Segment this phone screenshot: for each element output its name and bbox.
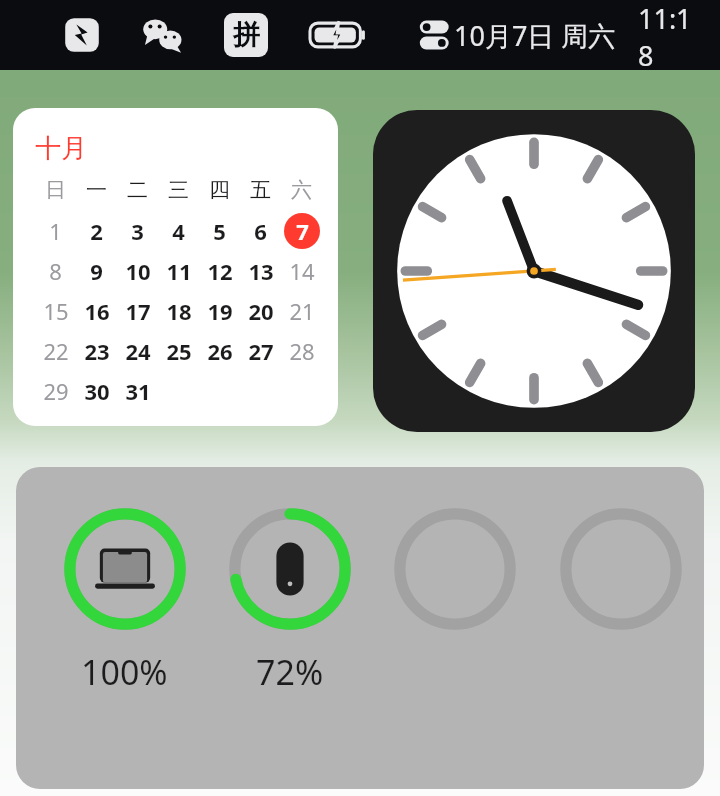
staticText: 11:18 [638,0,700,70]
button[interactable]: 100% [16,467,704,789]
staticText: 16 [84,296,110,326]
staticText: 13 [248,256,274,286]
staticText: 六 [291,177,312,203]
staticText: 24 [125,336,151,366]
button[interactable]: Pinyin input [224,13,268,57]
staticText: 20 [248,296,274,326]
staticText: 18 [166,296,192,326]
staticText: 10 [125,256,151,286]
button[interactable]: Battery charging [310,18,370,52]
button[interactable]: DingTalk [62,15,102,55]
staticText: 10月7日 周六 [454,17,616,54]
staticText: 3 [131,216,144,246]
staticText: 9 [90,256,103,286]
staticText: 1 [49,216,62,246]
staticText: 25 [166,336,192,366]
staticText: 14 [289,256,315,286]
button[interactable]: 100% [42,503,207,695]
staticText: 4 [172,216,185,246]
staticText: 29 [43,376,69,406]
staticText: 30 [84,376,110,406]
staticText: 一 [86,177,107,203]
staticText: 拼 [233,18,260,52]
staticText: 26 [207,336,233,366]
button[interactable]: Control Center [416,16,454,54]
staticText: 19 [207,296,233,326]
staticText: 11 [166,256,192,286]
button[interactable] [538,503,704,635]
staticText: 7 [296,216,309,246]
staticText: 21 [289,296,315,326]
staticText: 15 [43,296,69,326]
staticText: 27 [248,336,274,366]
staticText: 6 [254,216,267,246]
staticText: 72% [256,649,324,695]
staticText: 日 [45,177,66,203]
staticText: 22 [43,336,69,366]
staticText: 三 [168,177,189,203]
button[interactable]: 十月 [13,108,338,426]
staticText: 2 [90,216,103,246]
staticText: 100% [81,649,168,695]
staticText: 五 [250,177,271,203]
staticText: 28 [289,336,315,366]
button[interactable]: WeChat [142,14,184,56]
staticText: 23 [84,336,110,366]
staticText: 8 [49,256,62,286]
staticText: 12 [207,256,233,286]
staticText: 17 [125,296,151,326]
button[interactable] [372,503,538,635]
staticText: 31 [125,376,151,406]
staticText: 四 [209,177,230,203]
staticText: 二 [127,177,148,203]
staticText: 十月 [35,132,87,165]
button[interactable]: Clock [373,110,695,432]
staticText: 5 [213,216,226,246]
button[interactable]: 72% [207,503,372,695]
